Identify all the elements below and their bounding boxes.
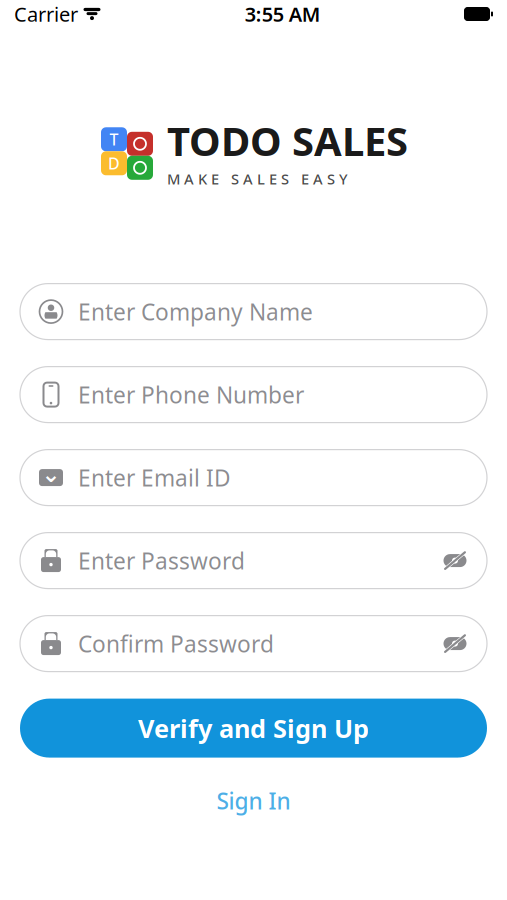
staticText: TODO SALES: [167, 114, 408, 167]
button[interactable]: Sign In: [200, 780, 306, 822]
staticText: Enter Phone Number: [78, 379, 304, 410]
button[interactable]: Enter Phone Number: [20, 367, 487, 423]
button[interactable]: ⌄: [20, 450, 487, 506]
staticText: Sign In: [216, 786, 290, 816]
staticText: Enter Password: [78, 545, 245, 576]
staticText: Confirm Password: [78, 628, 274, 659]
button[interactable]: Enter Company Name: [20, 284, 487, 340]
button[interactable]: Confirm Password: [20, 616, 487, 672]
button[interactable]: Verify and Sign Up: [20, 699, 487, 758]
staticText: Carrier: [14, 1, 78, 27]
staticText: ⌄: [41, 461, 60, 487]
button[interactable]: Enter Password: [20, 533, 487, 589]
staticText: Enter Email ID: [78, 462, 231, 493]
staticText: Enter Company Name: [78, 296, 313, 327]
staticText: D: [108, 153, 120, 174]
staticText: M A K E S A L E S E A S Y: [167, 169, 348, 189]
staticText: Verify and Sign Up: [138, 711, 369, 745]
staticText: 3:55 AM: [245, 1, 321, 27]
staticText: T: [109, 129, 118, 150]
